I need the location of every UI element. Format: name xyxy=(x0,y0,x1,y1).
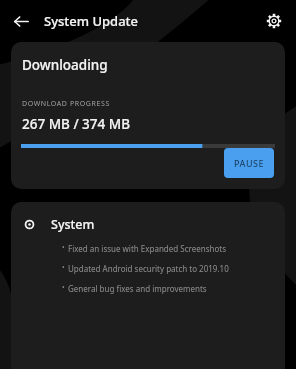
staticText: 267 MB / 374 MB xyxy=(22,115,131,133)
button[interactable]: Back xyxy=(4,4,38,38)
staticText: Updated Android security patch to 2019.1… xyxy=(68,263,229,274)
button[interactable]: PAUSE xyxy=(224,148,274,178)
button[interactable]: Settings xyxy=(258,5,290,37)
staticText: Fixed an issue with Expanded Screenshots xyxy=(68,243,226,254)
staticText: DOWNLOAD PROGRESS xyxy=(22,99,110,109)
staticText: General bug fixes and improvements xyxy=(68,283,207,294)
staticText: PAUSE xyxy=(234,157,265,169)
staticText: System Update xyxy=(44,12,139,30)
staticText: • xyxy=(62,243,65,253)
button[interactable]: Downloading xyxy=(11,42,285,189)
staticText: Downloading xyxy=(22,56,108,74)
staticText: • xyxy=(62,283,65,293)
staticText: System xyxy=(51,216,95,233)
button[interactable]: System xyxy=(11,202,285,369)
staticText: • xyxy=(62,263,65,273)
